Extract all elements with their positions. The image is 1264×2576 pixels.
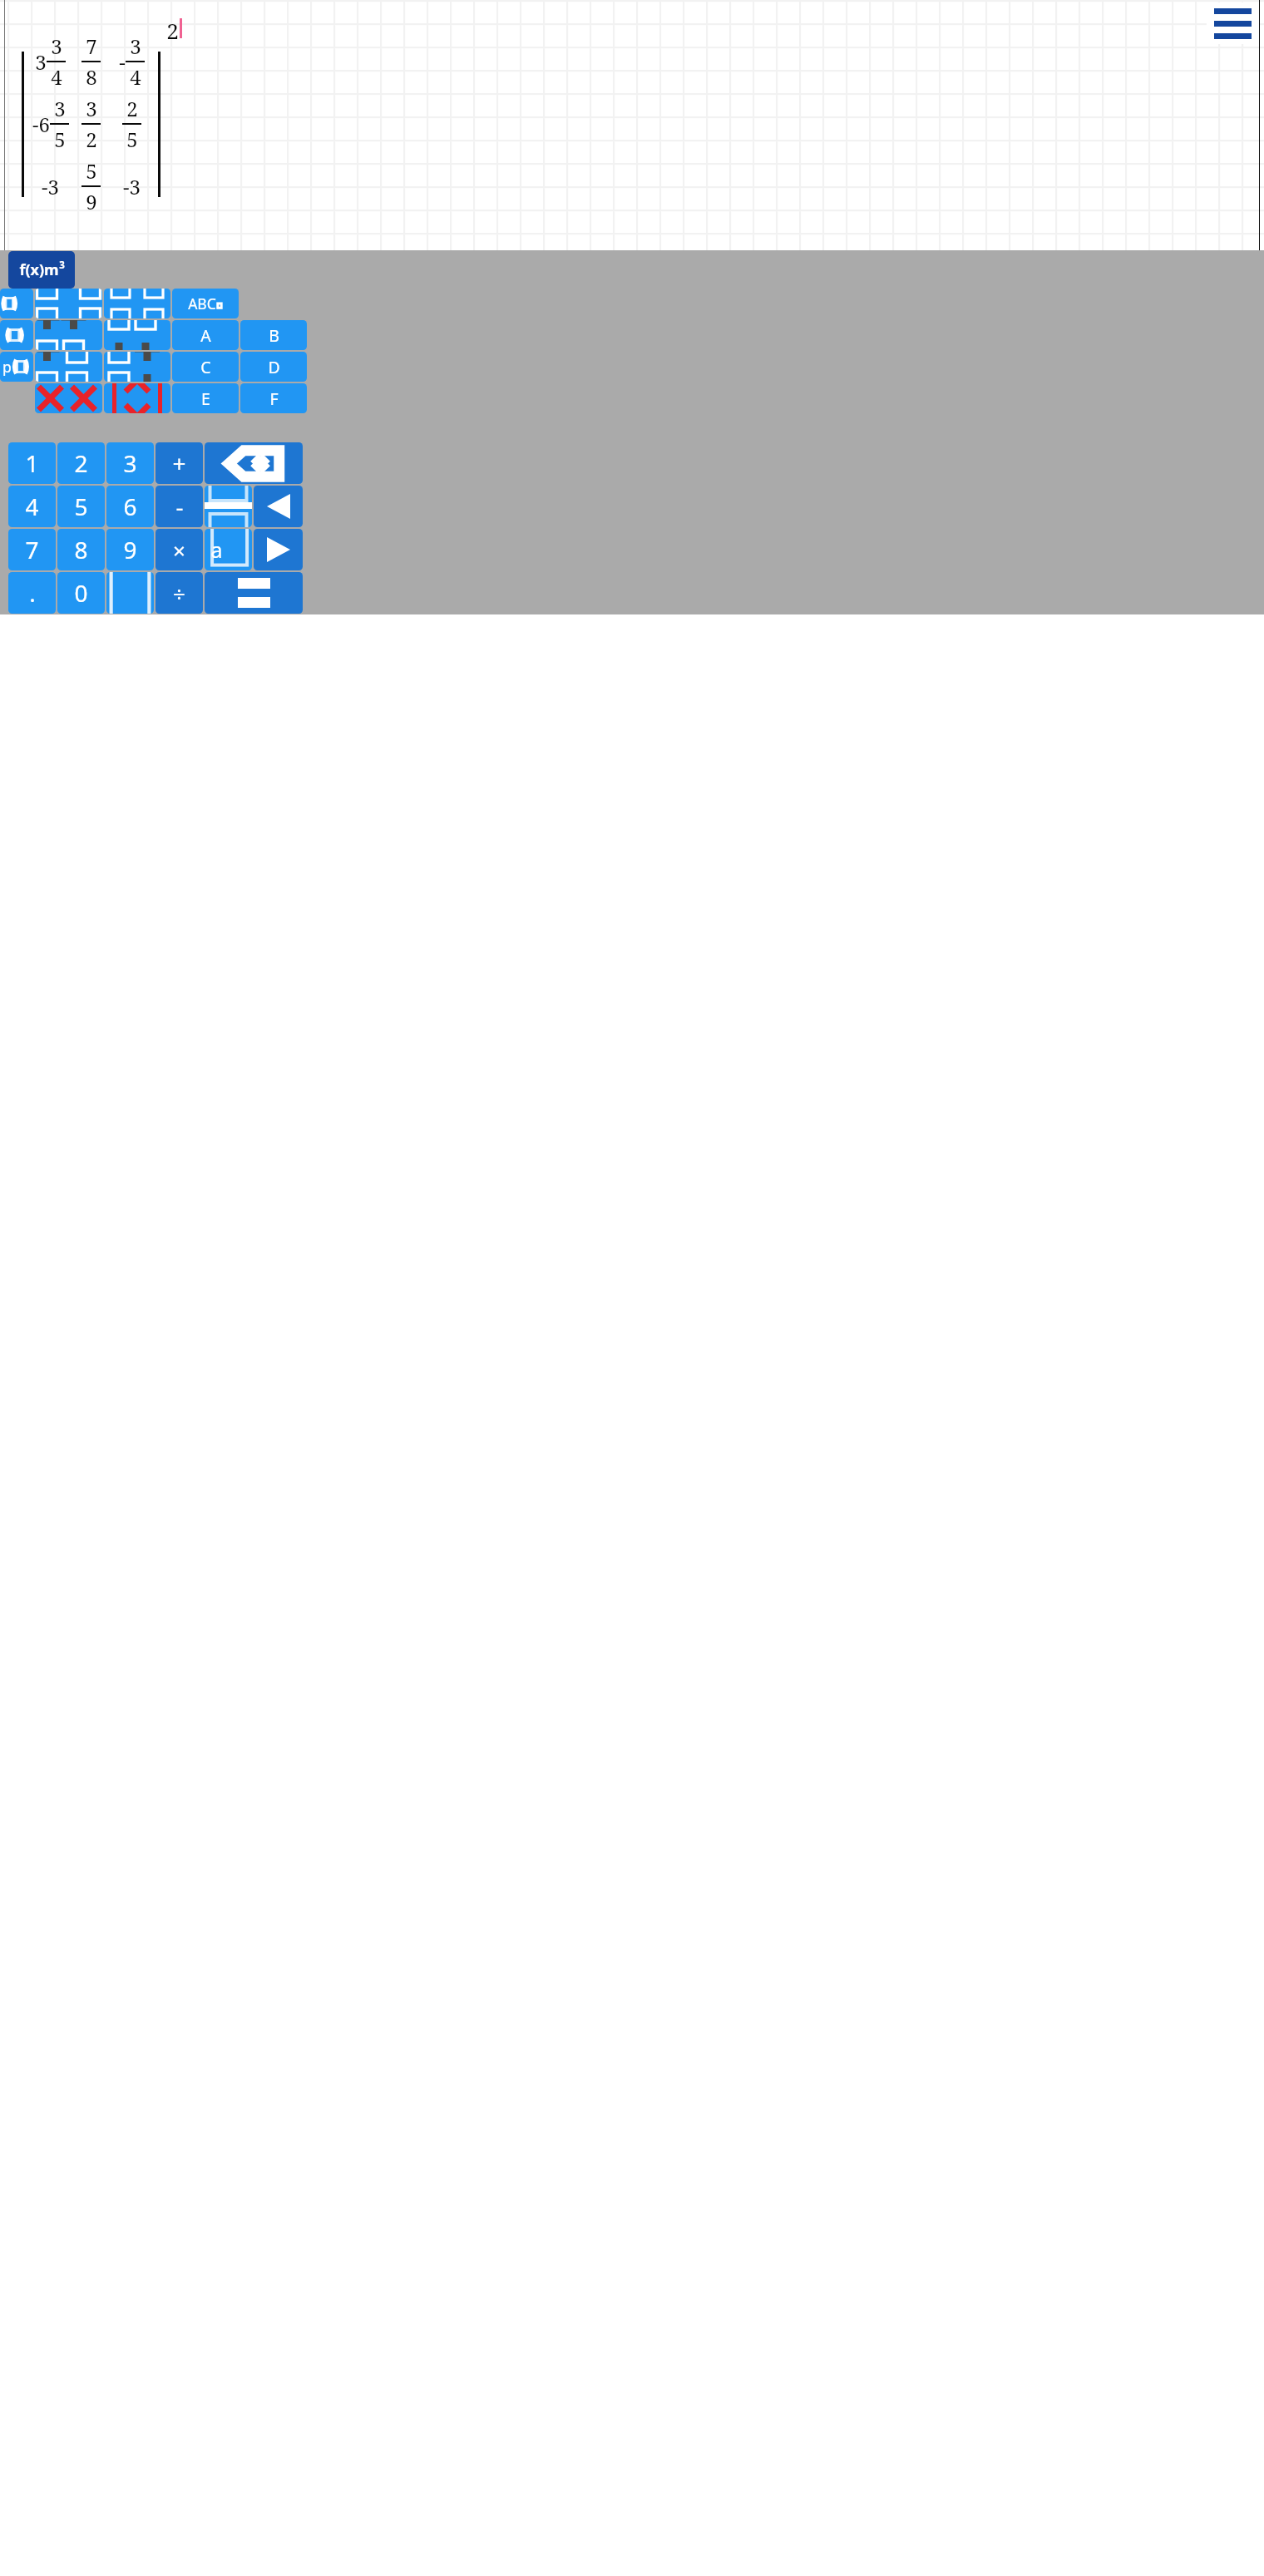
staticText: D — [268, 356, 280, 378]
staticText: a — [210, 535, 223, 564]
staticText: 7 — [86, 32, 97, 60]
button[interactable]: Parentheses — [106, 572, 154, 614]
button[interactable]: - — [156, 486, 203, 527]
button[interactable]: 1 — [8, 442, 56, 484]
button[interactable]: 8 — [57, 529, 105, 570]
staticText: 5 — [54, 126, 66, 153]
button[interactable]: 3 — [106, 442, 154, 484]
staticText: 4 — [130, 63, 141, 91]
button[interactable]: Menu — [1207, 2, 1259, 44]
staticText: - — [175, 491, 184, 522]
staticText: 3 — [86, 95, 97, 122]
staticText: 4 — [25, 491, 39, 522]
staticText: 5 — [74, 491, 88, 522]
staticText: + — [172, 447, 186, 479]
staticText: F — [269, 387, 279, 410]
button[interactable]: Backspace — [205, 442, 303, 484]
staticText: 5 — [86, 157, 97, 185]
staticText: A — [200, 324, 211, 347]
staticText: ÷ — [173, 579, 185, 608]
staticText: -3 — [123, 173, 141, 200]
button[interactable]: Equals — [205, 572, 303, 614]
staticText: -3 — [42, 173, 59, 200]
staticText: 0 — [74, 577, 88, 609]
staticText: 3 — [54, 95, 66, 122]
button[interactable]: ABC — [172, 289, 239, 318]
button[interactable]: F — [240, 383, 307, 413]
button[interactable]: Delete column — [104, 383, 170, 413]
staticText: E — [201, 387, 210, 410]
staticText: × — [173, 535, 185, 565]
staticText: 9 — [123, 534, 137, 565]
button[interactable]: 9 — [106, 529, 154, 570]
button[interactable]: Delete row — [35, 383, 102, 413]
staticText: - — [119, 48, 126, 76]
staticText: 2 — [126, 95, 138, 122]
staticText: f(x)m — [19, 259, 59, 280]
staticText: C — [200, 356, 211, 378]
staticText: p — [2, 357, 12, 377]
staticText: . — [29, 577, 36, 609]
staticText: 7 — [25, 534, 39, 565]
staticText: ABC — [188, 294, 216, 313]
button[interactable]: p parenthesis — [0, 352, 33, 382]
staticText: 3 — [123, 447, 137, 479]
staticText: -6 — [32, 111, 50, 138]
button[interactable]: Add column right — [104, 352, 170, 382]
button[interactable]: + — [156, 442, 203, 484]
button[interactable]: Right — [254, 529, 303, 570]
button[interactable]: B — [240, 320, 307, 350]
staticText: 2 — [166, 16, 179, 46]
button[interactable]: 7 — [8, 529, 56, 570]
button[interactable]: 5 — [57, 486, 105, 527]
button[interactable]: 6 — [106, 486, 154, 527]
staticText: 4 — [51, 63, 62, 91]
button[interactable]: f(x)m — [8, 251, 75, 289]
staticText: 3 — [130, 32, 141, 60]
button[interactable]: C — [172, 352, 239, 382]
staticText: 3 — [35, 48, 47, 76]
staticText: 1 — [25, 447, 39, 479]
button[interactable]: × — [156, 529, 203, 570]
staticText: 9 — [86, 188, 97, 215]
staticText: 3 — [51, 32, 62, 60]
button[interactable]: 2 — [57, 442, 105, 484]
staticText: B — [269, 324, 279, 347]
button[interactable]: 4 — [8, 486, 56, 527]
button[interactable]: D — [240, 352, 307, 382]
staticText: 3 — [59, 259, 65, 272]
button[interactable]: Add row below — [104, 320, 170, 350]
button[interactable]: Fraction — [205, 486, 252, 527]
button[interactable]: Add column — [35, 352, 102, 382]
button[interactable]: Determinant — [104, 289, 170, 318]
button[interactable]: Add row — [35, 320, 102, 350]
staticText: 2 — [86, 126, 97, 153]
button[interactable]: . — [8, 572, 56, 614]
button[interactable]: Parenthesis — [0, 320, 33, 350]
button[interactable]: 0 — [57, 572, 105, 614]
staticText: 6 — [123, 491, 137, 522]
button[interactable]: Parenthesis — [0, 289, 33, 318]
staticText: 8 — [74, 534, 88, 565]
staticText: 2 — [74, 447, 88, 479]
button[interactable]: ÷ — [156, 572, 203, 614]
button[interactable]: Left — [254, 486, 303, 527]
staticText: 5 — [126, 126, 138, 153]
staticText: 8 — [86, 63, 97, 91]
button[interactable]: A — [172, 320, 239, 350]
button[interactable]: E — [172, 383, 239, 413]
button[interactable]: Power — [205, 529, 252, 570]
button[interactable]: Matrix 2x2 — [35, 289, 102, 318]
